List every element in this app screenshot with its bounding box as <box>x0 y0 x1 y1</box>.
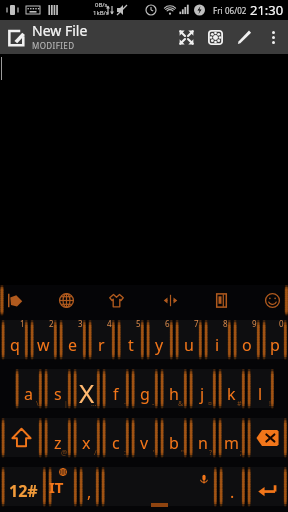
staticText: 8 <box>223 318 228 329</box>
button[interactable]: j <box>188 364 217 413</box>
button[interactable]: Language IT <box>47 462 78 511</box>
staticText: f <box>113 383 119 405</box>
button[interactable]: n <box>188 413 217 462</box>
button[interactable]: y <box>145 315 174 364</box>
staticText: h <box>169 383 179 405</box>
staticText: c <box>112 432 120 454</box>
button[interactable]: i <box>203 315 232 364</box>
staticText: b <box>169 432 179 454</box>
staticText: X <box>79 375 95 410</box>
staticText: o <box>242 334 252 356</box>
button[interactable]: o <box>232 315 261 364</box>
button[interactable]: Emoji <box>257 285 287 315</box>
button[interactable]: Comma <box>78 462 100 511</box>
button[interactable]: c <box>101 413 130 462</box>
button[interactable]: w <box>29 315 58 364</box>
button[interactable]: q <box>0 315 29 364</box>
staticText: , <box>87 481 92 503</box>
button[interactable]: Edit <box>230 20 259 54</box>
button[interactable]: Edit file name <box>0 20 32 54</box>
staticText: · <box>124 399 126 409</box>
button[interactable]: More options <box>259 20 288 54</box>
staticText: 6 <box>165 318 170 329</box>
staticText: 06/02 <box>225 5 247 16</box>
staticText: s <box>54 383 62 405</box>
button[interactable]: v <box>130 413 159 462</box>
staticText: l <box>258 383 263 405</box>
staticText: m <box>224 432 239 454</box>
staticText: z <box>54 432 62 454</box>
staticText: . <box>230 481 235 503</box>
staticText: 7 <box>194 318 199 329</box>
button[interactable]: Settings <box>201 20 230 54</box>
staticText: 1kB/s <box>93 9 109 17</box>
staticText: Fri <box>213 5 223 16</box>
button[interactable]: f <box>101 364 130 413</box>
staticText: r <box>98 334 105 356</box>
button[interactable]: Handwriting <box>0 285 30 315</box>
staticText: w <box>37 334 50 356</box>
button[interactable]: Language <box>51 285 81 315</box>
button[interactable]: m <box>217 413 246 462</box>
button[interactable]: Space <box>100 462 218 511</box>
staticText: v <box>140 432 149 454</box>
button[interactable]: e <box>58 315 87 364</box>
button[interactable]: Symbols <box>0 462 47 511</box>
button[interactable]: k <box>217 364 246 413</box>
button[interactable]: x <box>72 413 101 462</box>
staticText: a <box>24 383 33 405</box>
button[interactable]: a <box>14 364 43 413</box>
staticText: 9 <box>252 318 257 329</box>
staticText: 3 <box>78 318 83 329</box>
staticText: p <box>270 334 280 356</box>
button[interactable]: z <box>43 413 72 462</box>
button[interactable]: Period <box>218 462 246 511</box>
staticText: y <box>155 334 164 356</box>
button[interactable]: Clipboard <box>206 285 236 315</box>
staticText: n <box>198 432 208 454</box>
staticText: j <box>200 383 205 405</box>
button[interactable]: g <box>130 364 159 413</box>
staticText: ' <box>153 448 155 458</box>
staticText: - <box>152 399 155 409</box>
staticText: MODIFIED <box>32 40 75 51</box>
staticText: & <box>178 399 184 409</box>
staticText: ! <box>269 399 271 409</box>
staticText: @ <box>61 448 68 458</box>
staticText: " <box>181 448 184 458</box>
button[interactable]: l <box>246 364 275 413</box>
button[interactable]: b <box>159 413 188 462</box>
button[interactable]: Shift <box>0 413 43 462</box>
staticText: 21:30 <box>250 1 284 19</box>
staticText: x <box>82 432 91 454</box>
button[interactable]: Backspace <box>246 413 288 462</box>
staticText: IT <box>49 477 64 497</box>
button[interactable]: Resize <box>155 285 185 315</box>
staticText: t <box>128 334 134 356</box>
button[interactable]: p <box>261 315 288 364</box>
staticText: | <box>64 399 68 409</box>
staticText: New File <box>32 21 88 40</box>
button[interactable]: Enter <box>246 462 288 511</box>
button[interactable]: r <box>87 315 116 364</box>
button[interactable]: s <box>43 364 72 413</box>
button[interactable]: d <box>72 364 101 413</box>
staticText: i <box>215 334 220 356</box>
staticText: 2 <box>49 318 54 329</box>
staticText: 1 <box>20 318 25 329</box>
staticText: q <box>10 334 20 356</box>
staticText: / <box>94 448 97 458</box>
button[interactable]: u <box>174 315 203 364</box>
staticText: 0B/s <box>95 1 108 9</box>
button[interactable]: h <box>159 364 188 413</box>
button[interactable]: t <box>116 315 145 364</box>
staticText: 4 <box>107 318 112 329</box>
staticText: ; <box>240 448 242 458</box>
staticText: ¤ <box>208 399 213 409</box>
staticText: u <box>184 334 194 356</box>
button[interactable]: Theme <box>101 285 131 315</box>
staticText: : <box>124 448 126 458</box>
button[interactable]: Fullscreen <box>172 20 201 54</box>
staticText: ? <box>209 448 213 458</box>
staticText: e <box>68 334 78 356</box>
